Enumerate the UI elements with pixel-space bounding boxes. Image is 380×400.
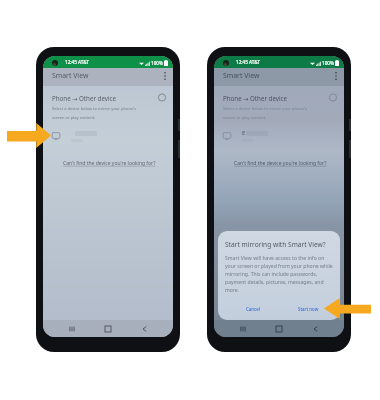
button[interactable]: E (52, 129, 167, 142)
button[interactable]: Can't find the device you're looking for… (234, 160, 327, 167)
button[interactable]: Home (272, 322, 286, 336)
button[interactable]: Back (308, 322, 322, 336)
staticText: Select a device below to mirror your pho… (223, 106, 307, 120)
button[interactable]: Recents (65, 322, 79, 336)
staticText: Start mirroring with Smart View? (225, 240, 326, 249)
staticText: 100% (151, 60, 163, 66)
staticText: 12:45 AT&T (65, 59, 89, 65)
staticText: Cancel (246, 306, 260, 312)
staticText: Smart View (52, 71, 89, 80)
button[interactable]: Back (137, 322, 151, 336)
button[interactable]: More options (330, 70, 342, 82)
staticText: Phone → Other device (52, 94, 116, 102)
staticText: Start now (298, 306, 319, 312)
button[interactable]: More options (159, 70, 171, 82)
button[interactable]: Recents (236, 322, 250, 336)
staticText: 12:45 AT&T (236, 59, 260, 65)
button[interactable]: Start now (280, 303, 336, 315)
button[interactable]: Cancel (225, 303, 280, 315)
staticText: 100% (322, 60, 334, 66)
staticText: E (242, 129, 246, 137)
staticText: Select a device below to mirror your pho… (52, 106, 136, 120)
button[interactable]: Home (101, 322, 115, 336)
staticText: Smart View will have access to the info … (225, 255, 333, 294)
staticText: Smart View (223, 71, 260, 80)
button[interactable]: E (223, 129, 338, 142)
staticText: Phone → Other device (223, 94, 287, 102)
button[interactable]: Can't find the device you're looking for… (63, 160, 156, 167)
